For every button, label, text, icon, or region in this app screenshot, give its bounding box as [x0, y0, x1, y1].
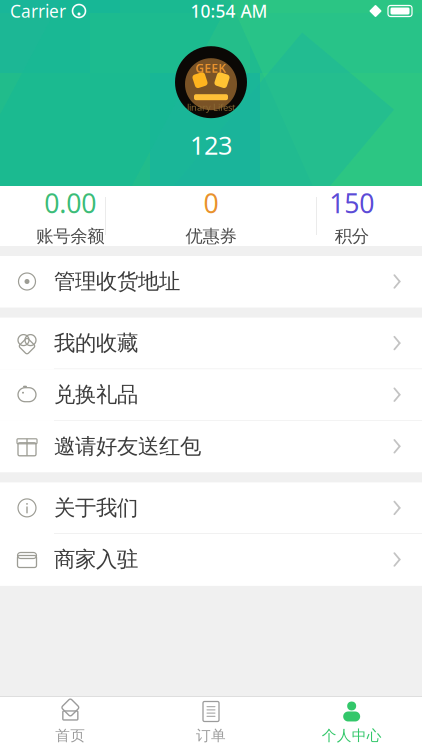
staticText: 10:54 AM — [190, 0, 267, 22]
staticText: 个人中心 — [322, 726, 382, 744]
staticText: 150 — [329, 185, 374, 220]
button[interactable]: 首页 — [0, 697, 141, 747]
staticText: 商家入驻 — [54, 546, 138, 573]
button[interactable]: 管理收货地址 — [0, 256, 422, 308]
staticText: GEEK — [195, 60, 226, 76]
button[interactable]: 个人中心 — [281, 697, 422, 747]
button[interactable]: 邀请好友送红包 — [0, 421, 422, 472]
button[interactable]: 150 — [281, 186, 422, 246]
button[interactable]: 我的收藏 — [0, 318, 422, 369]
staticText: 管理收货地址 — [54, 268, 180, 295]
staticText: 0.00 — [44, 185, 96, 220]
button[interactable]: 0 — [141, 186, 281, 246]
staticText: 123 — [190, 128, 232, 162]
staticText: 账号余额 — [36, 226, 104, 247]
button[interactable]: 关于我们 — [0, 482, 422, 534]
staticText: 邀请好友送红包 — [54, 433, 201, 459]
staticText: linary Lifest — [187, 101, 235, 113]
staticText: 我的收藏 — [54, 330, 138, 356]
staticText: 积分 — [335, 226, 369, 247]
staticText: 优惠券 — [185, 226, 236, 247]
button[interactable]: 订单 — [141, 697, 281, 747]
staticText: 关于我们 — [54, 495, 138, 521]
staticText: 0 — [203, 185, 218, 220]
staticText: 订单 — [196, 726, 226, 744]
staticText: 首页 — [55, 726, 85, 744]
staticText: Carrier — [10, 0, 66, 22]
button[interactable]: 0.00 — [0, 186, 141, 246]
button[interactable]: 兑换礼品 — [0, 369, 422, 421]
staticText: 兑换礼品 — [54, 382, 138, 408]
button[interactable]: 商家入驻 — [0, 534, 422, 586]
